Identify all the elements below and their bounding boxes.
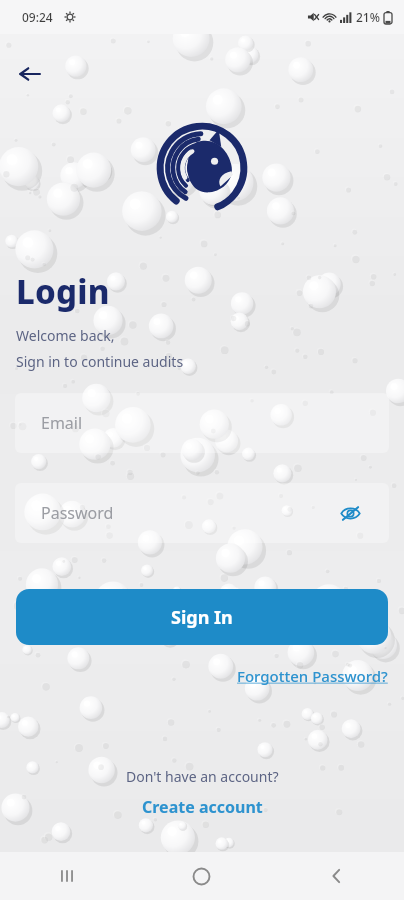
staticText: Welcome back,: [16, 326, 115, 345]
staticText: 21%: [356, 9, 380, 25]
button[interactable]: Create account: [136, 794, 269, 820]
staticText: Sign in to continue audits: [16, 352, 184, 371]
button[interactable]: Home: [134, 852, 269, 900]
staticText: Forgotten Password?: [237, 666, 388, 686]
staticText: Login: [16, 269, 110, 314]
staticText: 09:24: [22, 9, 53, 25]
staticText: Don't have an account?: [126, 767, 279, 786]
staticText: Create account: [142, 796, 263, 818]
button[interactable]: Sign In: [16, 589, 388, 645]
button[interactable]: Back: [269, 852, 404, 900]
staticText: Sign In: [171, 605, 233, 630]
button[interactable]: Recents: [0, 852, 134, 900]
button[interactable]: Forgotten Password?: [235, 663, 390, 689]
staticText: Password: [41, 502, 114, 524]
button[interactable]: Back: [8, 52, 52, 96]
button[interactable]: Email: [15, 393, 389, 453]
staticText: Email: [41, 412, 83, 434]
button[interactable]: Password: [15, 483, 389, 543]
button[interactable]: Show password: [335, 498, 365, 528]
